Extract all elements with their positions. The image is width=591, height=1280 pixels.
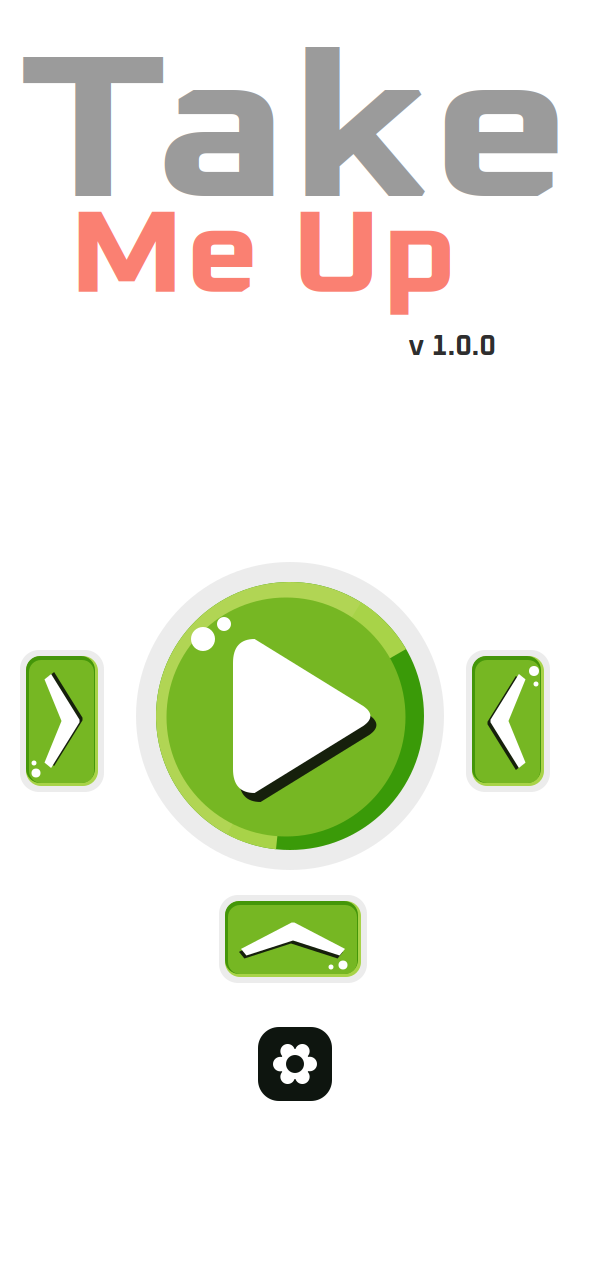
staticText: Me Up: [90, 200, 435, 316]
button[interactable]: Up: [219, 895, 367, 983]
button[interactable]: Forward: [20, 650, 104, 792]
button[interactable]: Settings: [258, 1027, 332, 1101]
button[interactable]: Play: [136, 562, 444, 870]
button[interactable]: Back: [466, 650, 550, 792]
staticText: v 1.0.0: [408, 333, 495, 361]
staticText: Take: [71, 38, 519, 238]
